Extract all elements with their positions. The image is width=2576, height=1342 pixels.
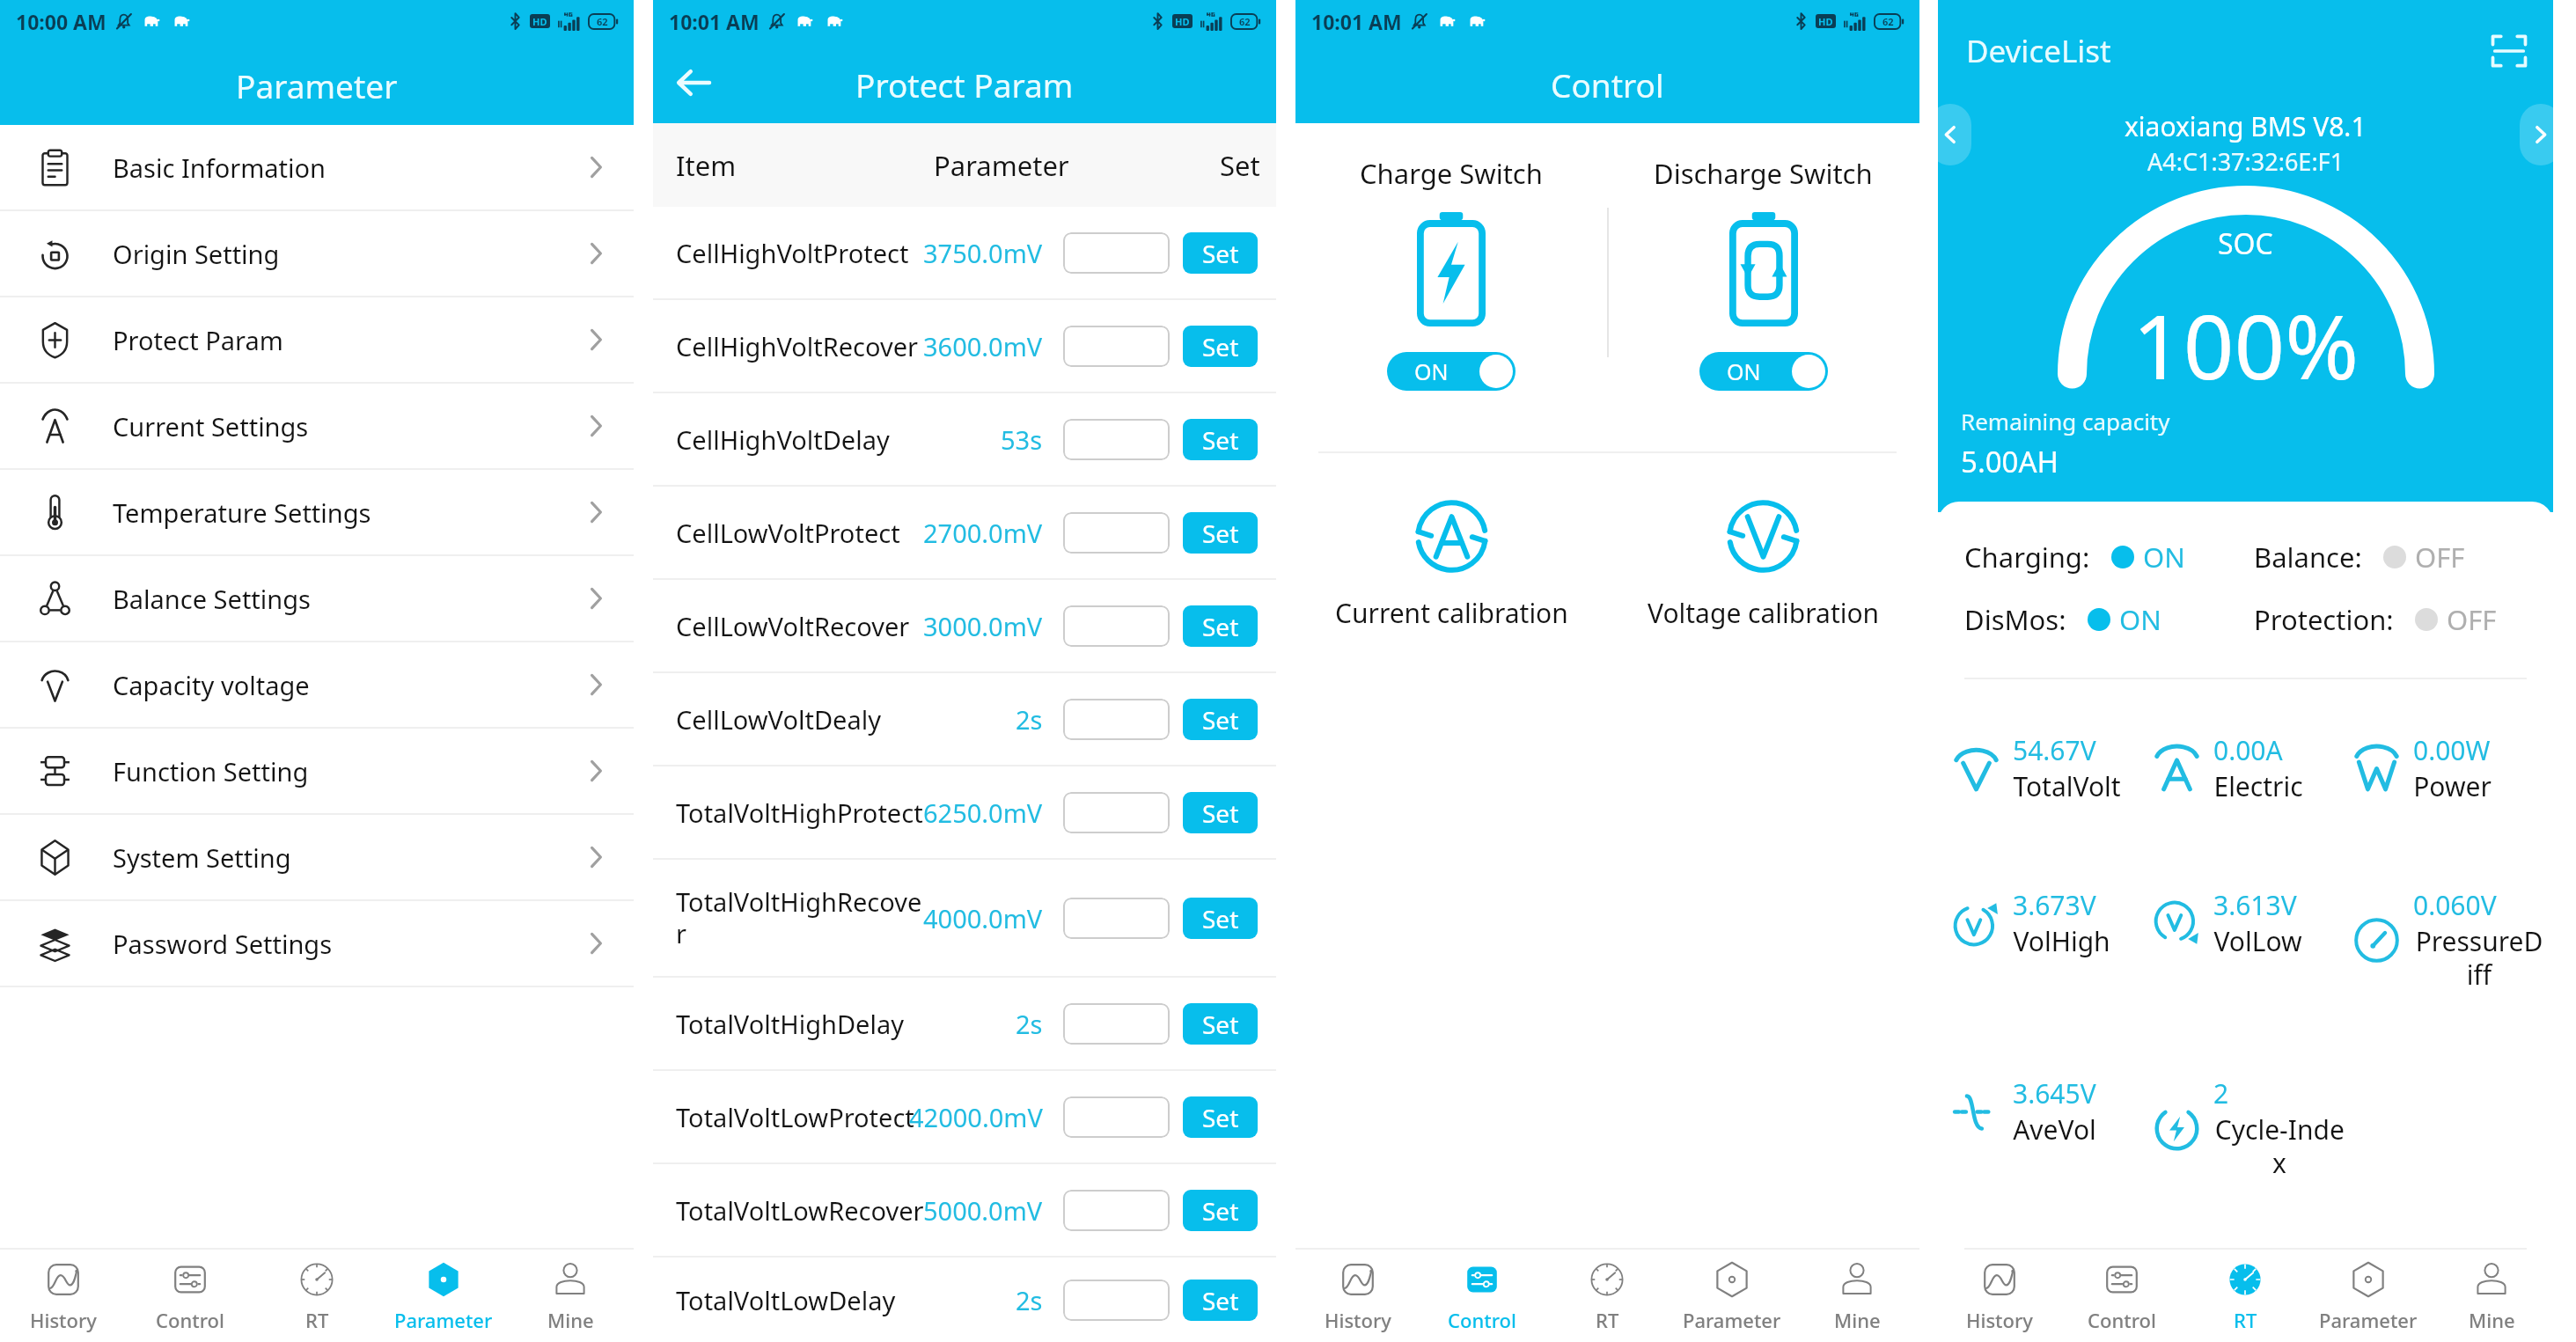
button[interactable]: Balance Settings — [0, 556, 634, 642]
button[interactable] — [1063, 792, 1170, 833]
staticText: TotalVolt — [2013, 768, 2121, 804]
staticText: 42000.0mV — [909, 1100, 1043, 1134]
button[interactable]: Protect Param — [0, 297, 634, 384]
staticText: Charge Switch — [1360, 155, 1543, 192]
button[interactable]: History — [1295, 1250, 1420, 1342]
staticText: Set — [1202, 703, 1239, 737]
staticText: AveVol — [2013, 1111, 2096, 1148]
staticText: Balance Settings — [113, 582, 311, 616]
staticText: PressureDiff — [2413, 923, 2545, 993]
button[interactable] — [1063, 1280, 1170, 1321]
button[interactable]: Parameter — [1670, 1250, 1794, 1342]
staticText: Item — [676, 147, 737, 184]
button[interactable] — [1063, 605, 1170, 647]
staticText: 62 — [597, 15, 608, 28]
button[interactable]: Set — [1183, 605, 1258, 647]
button[interactable] — [1063, 326, 1170, 367]
staticText: Voltage calibration — [1648, 595, 1880, 631]
button[interactable]: Password Settings — [0, 901, 634, 987]
button[interactable]: ON — [1387, 352, 1516, 391]
staticText: ON — [2119, 601, 2161, 638]
button[interactable]: Set — [1183, 1280, 1258, 1321]
staticText: Set — [1220, 147, 1260, 184]
button[interactable]: Origin Setting — [0, 211, 634, 297]
button[interactable]: Set — [1183, 1190, 1258, 1231]
button[interactable]: Voltage calibration — [1607, 497, 1919, 631]
staticText: OFF — [2415, 539, 2465, 576]
button[interactable]: Set — [1183, 232, 1258, 274]
button[interactable]: Mine — [2430, 1250, 2553, 1342]
staticText: Parameter — [1683, 1307, 1781, 1333]
button[interactable]: Current calibration — [1295, 497, 1607, 631]
staticText: 3.613V — [2213, 887, 2297, 923]
staticText: ON — [1414, 356, 1449, 386]
staticText: 10:01 AM — [669, 8, 760, 35]
button[interactable]: Mine — [1794, 1250, 1919, 1342]
button[interactable] — [1063, 1096, 1170, 1138]
button[interactable]: Set — [1183, 1096, 1258, 1138]
button[interactable]: Function Setting — [0, 729, 634, 815]
staticText: CellHighVoltDelay — [676, 422, 890, 457]
button[interactable]: Set — [1183, 792, 1258, 833]
staticText: Charging: — [1964, 539, 2090, 576]
button[interactable]: Parameter — [380, 1250, 507, 1342]
button[interactable] — [1063, 898, 1170, 939]
staticText: VolLow — [2213, 923, 2302, 959]
button[interactable]: Set — [1183, 898, 1258, 939]
button[interactable] — [1063, 512, 1170, 554]
staticText: RT — [305, 1307, 329, 1333]
staticText: Set — [1202, 610, 1239, 643]
staticText: ON — [1727, 356, 1761, 386]
button[interactable]: RT — [253, 1250, 380, 1342]
button[interactable]: Temperature Settings — [0, 470, 634, 556]
staticText: 0.00W — [2413, 732, 2491, 768]
button[interactable]: RT — [2183, 1250, 2307, 1342]
staticText: 3.645V — [2013, 1075, 2096, 1111]
button[interactable]: System Setting — [0, 815, 634, 901]
button[interactable] — [1063, 699, 1170, 740]
button[interactable] — [1063, 1003, 1170, 1045]
staticText: Set — [1202, 1008, 1239, 1041]
button[interactable]: Set — [1183, 326, 1258, 367]
button[interactable]: Current Settings — [0, 384, 634, 470]
button[interactable]: Set — [1183, 419, 1258, 460]
button[interactable]: Set — [1183, 1003, 1258, 1045]
button[interactable]: Control — [127, 1250, 253, 1342]
button[interactable]: Next device — [2520, 104, 2562, 165]
staticText: TotalVoltLowProtect — [676, 1100, 914, 1134]
button[interactable]: History — [1938, 1250, 2060, 1342]
button[interactable]: Capacity voltage — [0, 642, 634, 729]
button[interactable]: Basic Information — [0, 125, 634, 211]
button[interactable]: Scan QR code — [2486, 28, 2532, 74]
button[interactable]: Set — [1183, 512, 1258, 554]
staticText: Set — [1202, 517, 1239, 550]
button[interactable]: Mine — [507, 1250, 634, 1342]
button[interactable]: Parameter — [2307, 1250, 2430, 1342]
button[interactable] — [1063, 1190, 1170, 1231]
staticText: Control — [1448, 1307, 1516, 1333]
button[interactable]: Control — [2060, 1250, 2183, 1342]
staticText: 2s — [1016, 1007, 1043, 1041]
button[interactable]: Previous device — [1929, 104, 1971, 165]
button[interactable]: Back — [672, 62, 715, 104]
staticText: Protect Param — [113, 323, 283, 357]
staticText: Capacity voltage — [113, 668, 310, 702]
staticText: Control — [2088, 1307, 2156, 1333]
staticText: TotalVoltLowDelay — [676, 1283, 896, 1317]
staticText: Function Setting — [113, 754, 309, 788]
staticText: Origin Setting — [113, 237, 280, 271]
button[interactable] — [1063, 232, 1170, 274]
button[interactable]: ON — [1699, 352, 1828, 391]
button[interactable]: RT — [1545, 1250, 1670, 1342]
staticText: TotalVoltHighRecover — [676, 884, 929, 951]
staticText: 3000.0mV — [923, 609, 1043, 643]
button[interactable] — [1063, 419, 1170, 460]
button[interactable]: Set — [1183, 699, 1258, 740]
staticText: VolHigh — [2013, 923, 2110, 959]
staticText: Electric — [2213, 768, 2303, 804]
button[interactable]: Control — [1420, 1250, 1545, 1342]
button[interactable]: History — [0, 1250, 127, 1342]
staticText: Control — [1551, 62, 1664, 106]
staticText: TotalVoltHighDelay — [676, 1007, 904, 1041]
staticText: Control — [156, 1307, 224, 1333]
